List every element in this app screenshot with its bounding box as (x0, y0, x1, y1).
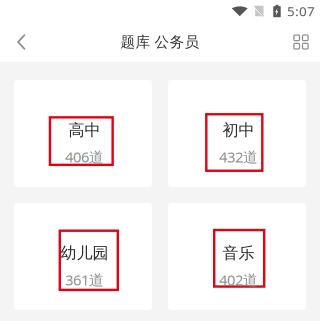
staticText: 幼儿园 (60, 243, 108, 263)
staticText: 初中 (222, 120, 254, 140)
staticText: 5:07 (287, 2, 315, 20)
staticText: 音乐 (222, 243, 254, 263)
button[interactable]: 音乐 (168, 203, 306, 310)
staticText: 题库 公务员 (120, 33, 199, 51)
button[interactable]: 初中 (168, 80, 306, 187)
staticText: 402道 (219, 270, 258, 290)
staticText: 432道 (219, 147, 258, 167)
staticText: 高中 (68, 120, 100, 140)
button[interactable]: 幼儿园 (14, 203, 152, 310)
button[interactable]: Back (0, 22, 43, 62)
button[interactable]: 高中 (14, 80, 152, 187)
button[interactable]: Grid layout (282, 22, 320, 62)
staticText: 406道 (65, 147, 104, 167)
staticText: 361道 (65, 270, 104, 290)
